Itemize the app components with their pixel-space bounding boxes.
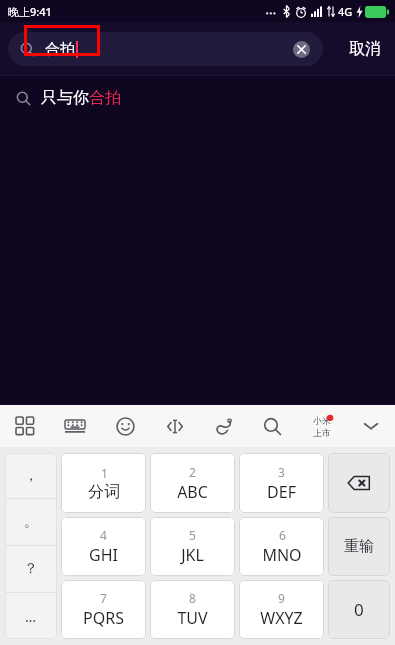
staticText: 取消 bbox=[349, 39, 381, 59]
staticText: MNO bbox=[262, 544, 302, 566]
button[interactable]: Clipboard bbox=[199, 405, 248, 447]
button[interactable]: ， bbox=[5, 453, 57, 498]
staticText: 2 bbox=[189, 464, 196, 480]
staticText: TUV bbox=[177, 607, 208, 629]
button[interactable]: Move cursor bbox=[150, 405, 199, 447]
button[interactable]: 9 bbox=[239, 580, 324, 639]
button[interactable]: Search bbox=[248, 405, 297, 447]
staticText: JKL bbox=[181, 544, 204, 566]
staticText: 4G bbox=[338, 4, 353, 19]
button[interactable]: 5 bbox=[150, 517, 235, 576]
staticText: DEF bbox=[267, 481, 296, 503]
staticText: ABC bbox=[177, 481, 208, 503]
staticText: 5 bbox=[189, 527, 196, 543]
button[interactable]: ？ bbox=[5, 546, 57, 592]
staticText: 9 bbox=[278, 590, 285, 606]
staticText: 晚上9:41 bbox=[8, 4, 52, 19]
button[interactable]: 8 bbox=[150, 580, 235, 639]
button[interactable]: 重输 bbox=[328, 517, 390, 576]
staticText: 。 bbox=[24, 513, 38, 531]
button[interactable]: Emoji bbox=[100, 405, 150, 447]
staticText: 上市 bbox=[313, 427, 331, 438]
staticText: ， bbox=[24, 467, 38, 485]
button[interactable]: 7 bbox=[61, 580, 146, 639]
button[interactable]: 0 bbox=[328, 580, 390, 639]
staticText: 8 bbox=[189, 590, 196, 606]
button[interactable]: Hide keyboard bbox=[346, 405, 395, 447]
button[interactable]: 合拍 bbox=[8, 32, 323, 66]
staticText: ？ bbox=[24, 560, 38, 578]
staticText: 3 bbox=[278, 464, 285, 480]
staticText: WXYZ bbox=[260, 607, 303, 629]
staticText: 7 bbox=[100, 590, 107, 606]
staticText: 小米 bbox=[313, 415, 331, 426]
staticText: 0 bbox=[354, 598, 364, 621]
button[interactable]: 1 bbox=[61, 453, 146, 513]
staticText: GHI bbox=[89, 544, 118, 566]
button[interactable]: 只与你合拍 bbox=[0, 76, 395, 120]
button[interactable]: Keyboard layouts bbox=[0, 405, 50, 447]
staticText: 4 bbox=[100, 527, 107, 543]
staticText: 重输 bbox=[344, 537, 374, 556]
button[interactable]: … bbox=[5, 593, 57, 639]
staticText: 合拍 bbox=[45, 40, 75, 59]
button[interactable]: 6 bbox=[239, 517, 324, 576]
button[interactable]: 。 bbox=[5, 499, 57, 545]
button[interactable]: 3 bbox=[239, 453, 324, 513]
button[interactable]: Xiaomi promotion bbox=[297, 405, 346, 447]
staticText: 1 bbox=[101, 465, 108, 481]
button[interactable]: 4 bbox=[61, 517, 146, 576]
button[interactable]: Clear text bbox=[288, 36, 314, 62]
staticText: 6 bbox=[279, 527, 286, 543]
button[interactable]: 取消 bbox=[341, 31, 389, 67]
button[interactable]: 2 bbox=[150, 453, 235, 513]
button[interactable]: Switch keyboard bbox=[50, 405, 100, 447]
staticText: 分词 bbox=[88, 482, 120, 502]
staticText: … bbox=[25, 607, 37, 626]
staticText: 只与你合拍 bbox=[41, 88, 121, 108]
staticText: PQRS bbox=[83, 607, 124, 629]
button[interactable]: Backspace bbox=[328, 453, 390, 513]
